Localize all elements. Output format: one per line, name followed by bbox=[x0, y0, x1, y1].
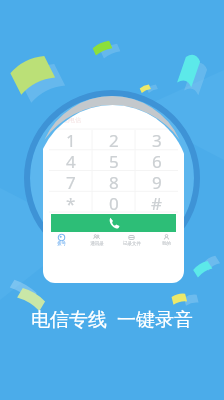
staticText: 中国电信 bbox=[57, 116, 81, 124]
button[interactable]: 8 bbox=[92, 171, 135, 192]
staticText: 7 bbox=[66, 171, 76, 192]
staticText: 我的 bbox=[162, 241, 171, 247]
staticText: 通讯录 bbox=[90, 241, 104, 247]
staticText: 0 bbox=[109, 192, 119, 212]
staticText: # bbox=[151, 192, 162, 212]
button[interactable]: 我的 bbox=[149, 234, 184, 247]
button[interactable]: 拨号 bbox=[43, 234, 79, 247]
staticText: 电信专线 一键录音 bbox=[31, 306, 193, 332]
button[interactable]: * bbox=[49, 192, 92, 212]
button[interactable]: 通讯录 bbox=[79, 234, 114, 247]
button[interactable]: 3 bbox=[135, 129, 178, 150]
staticText: 2 bbox=[109, 129, 119, 150]
button[interactable]: Call bbox=[51, 214, 176, 232]
staticText: 8 bbox=[109, 171, 119, 192]
button[interactable]: 记录文件 bbox=[114, 234, 149, 247]
staticText: 5 bbox=[109, 150, 119, 171]
button[interactable]: 6 bbox=[135, 150, 178, 171]
button[interactable]: 4 bbox=[49, 150, 92, 171]
staticText: 4 bbox=[66, 150, 76, 171]
staticText: * bbox=[66, 192, 76, 212]
staticText: 1 bbox=[66, 129, 76, 150]
button[interactable]: # bbox=[135, 192, 178, 212]
button[interactable]: 9 bbox=[135, 171, 178, 192]
staticText: 记录文件 bbox=[123, 241, 141, 247]
button[interactable]: 2 bbox=[92, 129, 135, 150]
button[interactable]: 7 bbox=[49, 171, 92, 192]
staticText: 9 bbox=[152, 171, 162, 192]
staticText: 6 bbox=[152, 150, 162, 171]
staticText: 3 bbox=[152, 129, 162, 150]
button[interactable]: 5 bbox=[92, 150, 135, 171]
staticText: 拨号 bbox=[57, 241, 66, 247]
button[interactable]: 1 bbox=[49, 129, 92, 150]
button[interactable]: 0 bbox=[92, 192, 135, 212]
